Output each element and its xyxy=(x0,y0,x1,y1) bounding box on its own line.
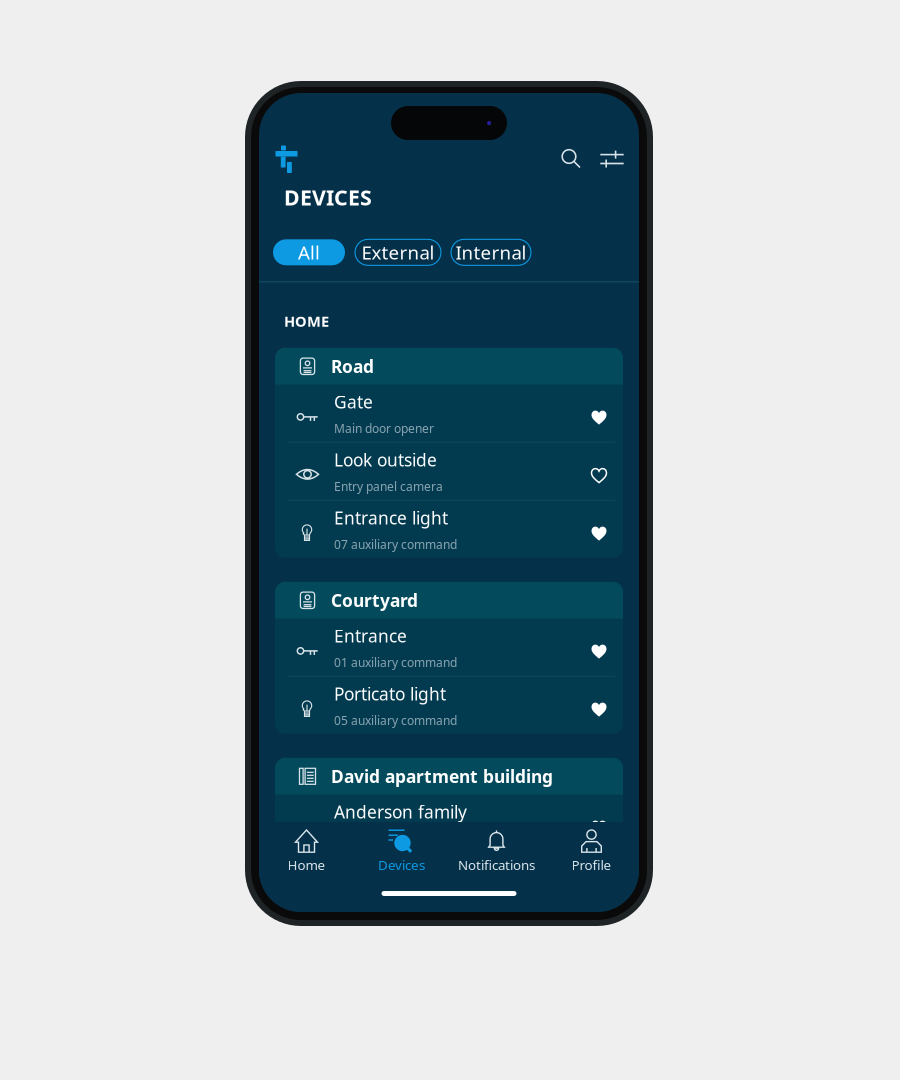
staticText: Look outside xyxy=(334,448,437,471)
button[interactable]: Filters xyxy=(599,146,625,172)
button[interactable]: Road xyxy=(275,348,623,385)
staticText: Notifications xyxy=(458,856,535,874)
staticText: Main door opener xyxy=(334,420,434,436)
button[interactable]: David apartment building xyxy=(275,758,623,795)
staticText: All xyxy=(298,240,320,265)
staticText: 01 auxiliary command xyxy=(334,654,457,670)
staticText: Devices xyxy=(378,856,425,874)
staticText: 05 auxiliary command xyxy=(334,712,457,728)
staticText: 07 auxiliary command xyxy=(334,536,457,552)
staticText: Entrance xyxy=(334,624,407,647)
staticText: DEVICES xyxy=(284,183,372,211)
button[interactable]: External xyxy=(355,239,441,265)
staticText: Hall light xyxy=(334,858,406,881)
staticText: Profile xyxy=(571,856,611,874)
button[interactable]: Home xyxy=(275,145,298,173)
staticText: Entrance light xyxy=(334,506,448,529)
button[interactable]: Porticato light xyxy=(275,677,623,734)
staticText: Entry panel camera xyxy=(334,478,443,494)
button[interactable]: Hall light xyxy=(275,853,623,910)
button[interactable]: Search xyxy=(561,146,585,172)
staticText: Porticato light xyxy=(334,682,446,705)
button[interactable]: Gate xyxy=(275,385,623,442)
button[interactable]: Look outside xyxy=(275,443,623,500)
staticText: Internal xyxy=(455,240,526,265)
button[interactable]: Devices xyxy=(354,822,449,875)
staticText: David apartment building xyxy=(331,765,553,788)
button[interactable]: Courtyard xyxy=(275,582,623,619)
button[interactable]: Entrance light xyxy=(275,501,623,558)
button[interactable]: Entrance xyxy=(275,619,623,676)
staticText: External xyxy=(361,240,434,265)
staticText: Gate xyxy=(334,390,373,413)
button[interactable]: Profile xyxy=(544,822,639,875)
staticText: Anderson family xyxy=(334,800,467,823)
staticText: Main door xyxy=(334,830,391,846)
button[interactable]: All xyxy=(273,239,345,265)
staticText: HOME xyxy=(284,311,329,331)
button[interactable]: Home xyxy=(259,822,354,875)
staticText: 02 auxiliary command xyxy=(334,888,457,904)
button[interactable]: Internal xyxy=(451,239,531,265)
staticText: Home xyxy=(287,856,325,874)
staticText: Road xyxy=(331,355,374,378)
button[interactable]: Anderson family xyxy=(275,795,623,852)
button[interactable]: Notifications xyxy=(449,822,544,875)
staticText: Courtyard xyxy=(331,589,418,612)
